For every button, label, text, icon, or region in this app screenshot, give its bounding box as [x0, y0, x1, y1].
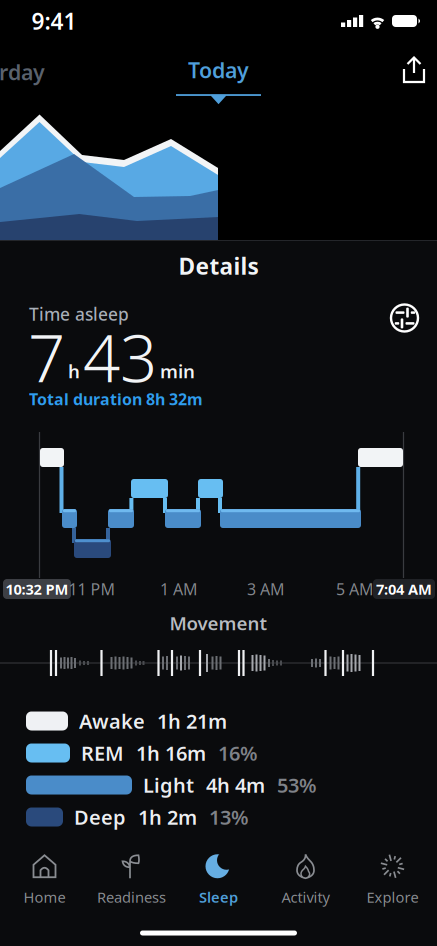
staticText: Today [188, 56, 249, 84]
staticText: Time asleep [29, 302, 129, 325]
staticText: 1h 21m [157, 708, 227, 734]
staticText: REM [81, 740, 124, 766]
button[interactable] [390, 304, 418, 332]
staticText: 13% [209, 804, 249, 830]
staticText: 5 AM [336, 578, 374, 600]
staticText: Sleep [199, 887, 238, 907]
staticText: Deep [74, 804, 126, 830]
staticText: Explore [366, 887, 418, 907]
staticText: 53% [277, 772, 317, 798]
staticText: Home [23, 887, 65, 907]
staticText: 43 [83, 314, 157, 400]
staticText: 7 [28, 314, 65, 400]
staticText: min [160, 359, 195, 383]
staticText: Total duration 8h 32m [29, 388, 203, 410]
staticText: Activity [281, 887, 329, 907]
button[interactable] [401, 56, 427, 84]
staticText: 1h 16m [136, 740, 206, 766]
button[interactable]: Yesterday [0, 58, 45, 86]
button[interactable]: Sleep [175, 850, 262, 908]
button[interactable]: Explore [349, 850, 436, 908]
staticText: 10:32 PM [5, 579, 68, 599]
staticText: Awake [79, 708, 145, 734]
staticText: Readiness [97, 887, 166, 907]
staticText: Yesterday [0, 58, 45, 86]
staticText: 4h 4m [206, 772, 265, 798]
staticText: Light [143, 772, 194, 798]
button[interactable]: Readiness [88, 850, 175, 908]
staticText: h [68, 359, 80, 383]
staticText: Details [178, 251, 258, 281]
button[interactable]: Home [1, 850, 88, 908]
staticText: 7:04 AM [376, 579, 432, 599]
staticText: 9:41 [31, 6, 76, 36]
staticText: 16% [218, 740, 258, 766]
staticText: Movement [169, 611, 267, 635]
staticText: 11 PM [68, 578, 115, 600]
button[interactable]: Activity [262, 850, 349, 908]
staticText: 1 AM [160, 578, 198, 600]
staticText: 1h 2m [138, 804, 197, 830]
staticText: 3 AM [247, 578, 285, 600]
button[interactable]: Today [176, 56, 261, 104]
